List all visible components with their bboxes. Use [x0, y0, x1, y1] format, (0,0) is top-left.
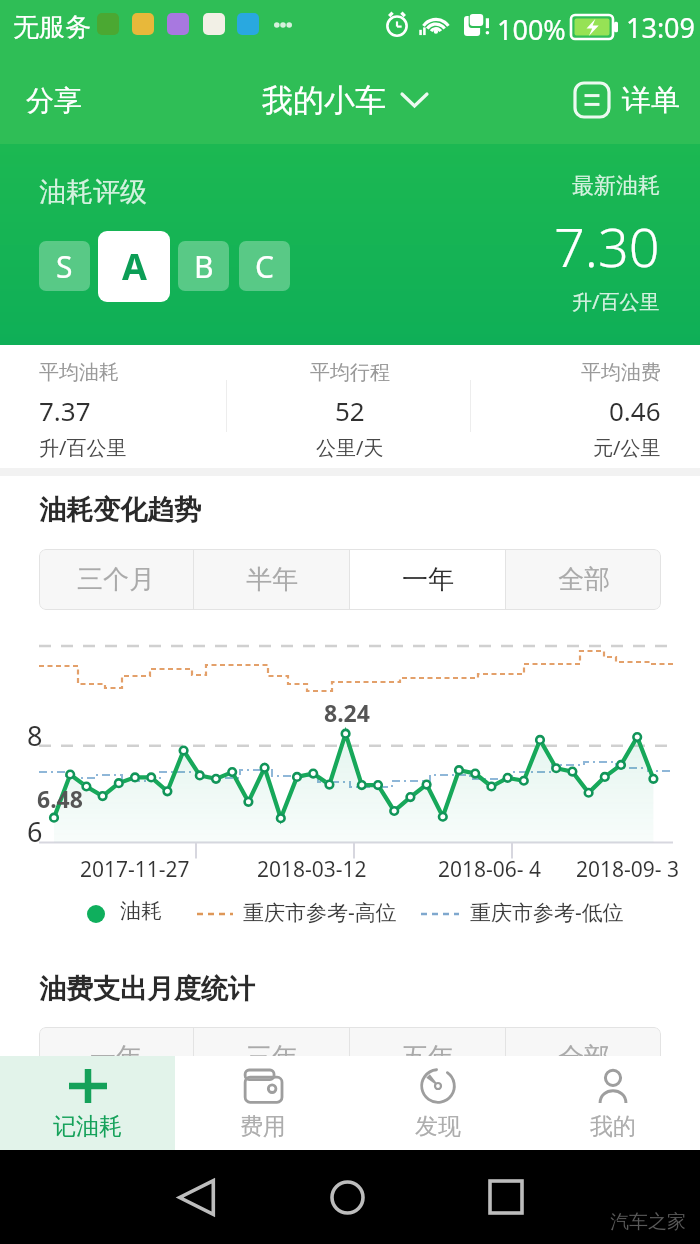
staticText: 三个月	[77, 563, 155, 596]
button[interactable]: Home	[315, 1165, 379, 1229]
staticText: C	[255, 246, 274, 287]
staticText: 公里/天	[316, 434, 384, 461]
staticText: 汽车之家	[610, 1210, 686, 1234]
staticText: 油耗评级	[39, 175, 147, 209]
staticText: 无服务	[13, 11, 91, 44]
staticText: 6	[27, 813, 43, 850]
staticText: 0.46	[609, 393, 661, 428]
staticText: 7.37	[39, 393, 91, 428]
staticText: 2018-03-12	[257, 855, 367, 884]
staticText: B	[194, 246, 214, 287]
button[interactable]: C	[239, 241, 290, 291]
staticText: 52	[335, 393, 365, 428]
staticText: 元/公里	[593, 434, 661, 461]
staticText: 详单	[622, 82, 680, 119]
staticText: 平均油费	[581, 360, 661, 385]
button[interactable]: 记油耗	[0, 1056, 175, 1150]
staticText: 100%	[497, 11, 566, 48]
button[interactable]: 一年	[39, 1027, 193, 1088]
staticText: 一年	[402, 563, 454, 596]
button[interactable]: 详单	[575, 70, 680, 130]
staticText: 半年	[246, 563, 298, 596]
staticText: 全部	[558, 563, 610, 596]
staticText: 三年	[246, 1041, 298, 1074]
staticText: 2018-06- 4	[438, 855, 542, 884]
button[interactable]: 我的小车	[262, 71, 427, 129]
staticText: 全部	[558, 1041, 610, 1074]
button[interactable]: 全部	[506, 549, 661, 610]
staticText: 最新油耗	[572, 172, 660, 200]
staticText: 油耗变化趋势	[39, 493, 201, 527]
staticText: 2017-11-27	[80, 855, 190, 884]
staticText: 13:09	[626, 9, 696, 46]
button[interactable]: Back	[164, 1165, 228, 1229]
staticText: 6.48	[37, 783, 83, 814]
staticText: 油耗	[120, 898, 162, 924]
button[interactable]: 五年	[350, 1027, 505, 1088]
button[interactable]: B	[178, 241, 229, 291]
button[interactable]: A	[98, 231, 170, 302]
staticText: 五年	[402, 1041, 454, 1074]
button[interactable]: 三年	[194, 1027, 349, 1088]
staticText: 7.30	[554, 209, 660, 283]
button[interactable]: Recents	[474, 1165, 538, 1229]
button[interactable]: S	[39, 241, 90, 291]
button[interactable]: 三个月	[39, 549, 193, 610]
staticText: A	[122, 242, 147, 291]
button[interactable]: 一年	[350, 549, 505, 610]
staticText: 升/百公里	[572, 288, 660, 315]
button[interactable]: 分享	[14, 72, 94, 128]
button[interactable]: 我的	[525, 1056, 700, 1150]
staticText: 费用	[240, 1112, 286, 1141]
staticText: 2018-09- 3	[576, 855, 680, 884]
staticText: 重庆市参考-高位	[243, 898, 397, 927]
staticText: 8.24	[324, 697, 370, 728]
button[interactable]: 半年	[194, 549, 349, 610]
staticText: 记油耗	[53, 1112, 122, 1141]
staticText: 一年	[90, 1041, 142, 1074]
button[interactable]: 费用	[175, 1056, 350, 1150]
staticText: S	[56, 246, 73, 287]
staticText: 我的小车	[262, 81, 386, 120]
staticText: 油费支出月度统计	[39, 972, 255, 1006]
staticText: 重庆市参考-低位	[470, 898, 624, 927]
staticText: 8	[27, 717, 43, 754]
staticText: 平均油耗	[39, 360, 119, 385]
staticText: 升/百公里	[39, 434, 127, 461]
staticText: 分享	[26, 83, 82, 118]
button[interactable]: 发现	[350, 1056, 525, 1150]
staticText: 发现	[415, 1112, 461, 1141]
button[interactable]: 全部	[506, 1027, 661, 1088]
staticText: 平均行程	[310, 360, 390, 385]
staticText: 我的	[590, 1112, 636, 1141]
